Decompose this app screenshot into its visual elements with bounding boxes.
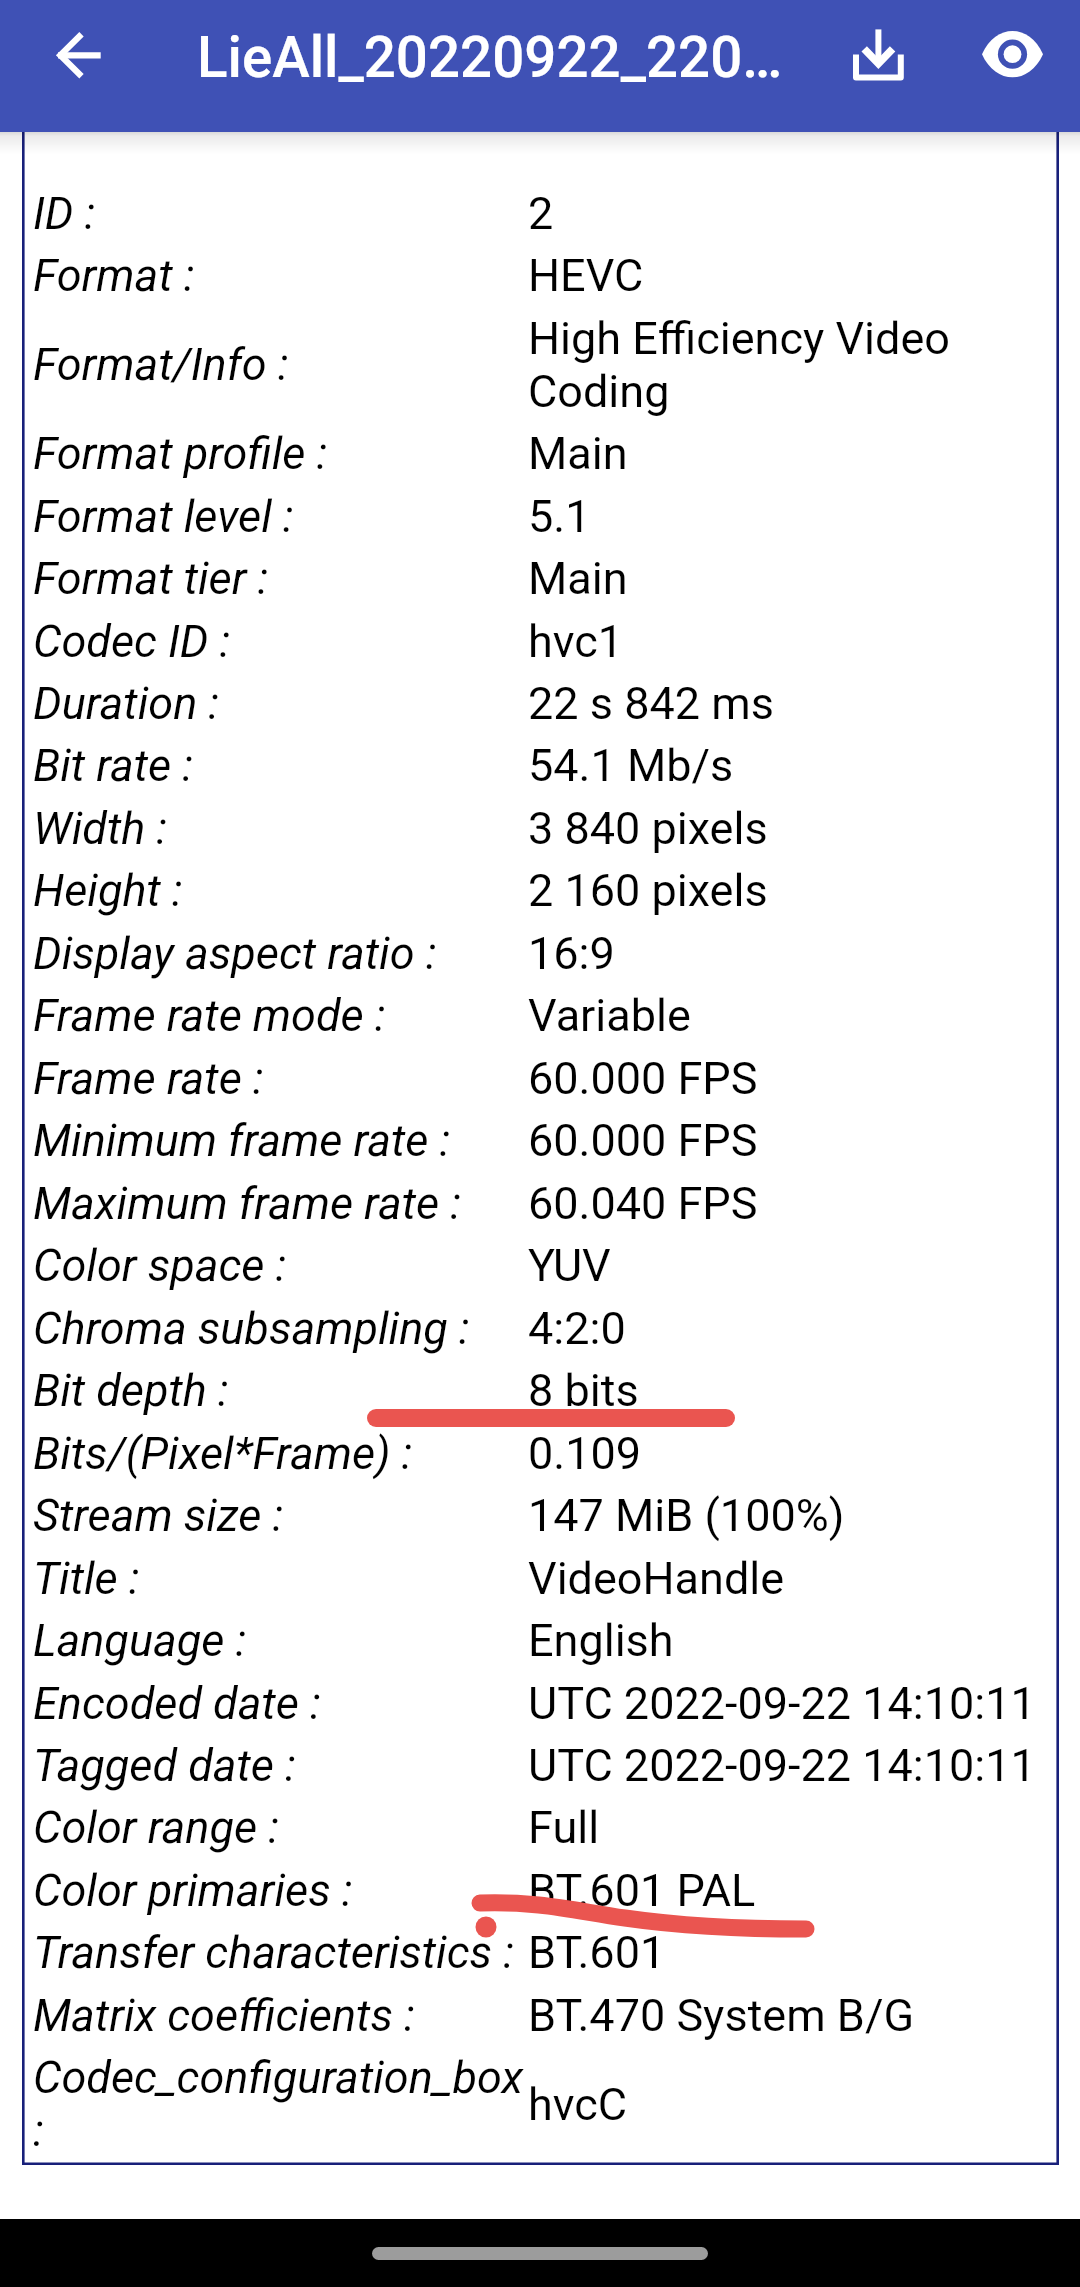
staticText: 22 s 842 ms — [528, 677, 1048, 730]
staticText: Frame rate mode : — [33, 989, 528, 1042]
staticText: Variable — [528, 989, 1048, 1042]
staticText: Color space : — [33, 1239, 528, 1292]
staticText: Format tier : — [33, 552, 528, 605]
button[interactable]: Download — [824, 1, 932, 109]
button[interactable] — [25, 797, 1056, 859]
staticText: Color range : — [33, 1801, 528, 1854]
button[interactable] — [25, 1484, 1056, 1546]
staticText: Frame rate : — [33, 1052, 528, 1105]
button[interactable] — [25, 1110, 1056, 1172]
button[interactable] — [25, 1359, 1056, 1421]
button[interactable] — [25, 1734, 1056, 1796]
button[interactable] — [25, 2047, 1056, 2162]
staticText: English — [528, 1614, 1048, 1667]
staticText: Full — [528, 1801, 1048, 1854]
staticText: Format level : — [33, 490, 528, 543]
staticText: Color primaries : — [33, 1864, 528, 1917]
staticText: 60.000 FPS — [528, 1052, 1048, 1105]
staticText: Minimum frame rate : — [33, 1114, 528, 1167]
staticText: LieAll_20220922_220… — [197, 25, 837, 91]
staticText: 3 840 pixels — [528, 802, 1048, 855]
button[interactable]: Preview — [958, 0, 1066, 108]
staticText: Width : — [33, 802, 528, 855]
staticText: Format profile : — [33, 427, 528, 480]
staticText: hvc1 — [528, 615, 1048, 668]
staticText: 2 160 pixels — [528, 864, 1048, 917]
staticText: Bit depth : — [33, 1364, 528, 1417]
staticText: Bits/(Pixel*Frame) : — [33, 1427, 528, 1480]
staticText: Format : — [33, 249, 528, 302]
staticText: 4:2:0 — [528, 1302, 1048, 1355]
button[interactable] — [25, 1984, 1056, 2046]
button[interactable] — [25, 860, 1056, 922]
staticText: Encoded date : — [33, 1677, 528, 1730]
button[interactable] — [25, 422, 1056, 484]
staticText: 60.040 FPS — [528, 1177, 1048, 1230]
staticText: Stream size : — [33, 1489, 528, 1542]
button[interactable] — [25, 485, 1056, 547]
staticText: Title : — [33, 1552, 528, 1605]
button[interactable] — [25, 1297, 1056, 1359]
staticText: Matrix coefficients : — [33, 1989, 528, 2042]
staticText: Transfer characteristics : — [33, 1926, 528, 1979]
button[interactable] — [25, 1422, 1056, 1484]
staticText: Bit rate : — [33, 739, 528, 792]
staticText: hvcC — [528, 2078, 1048, 2131]
button[interactable] — [25, 1234, 1056, 1296]
staticText: VideoHandle — [528, 1552, 1048, 1605]
staticText: BT.470 System B/G — [528, 1989, 1048, 2042]
staticText: 5.1 — [528, 490, 1048, 543]
button[interactable] — [25, 1547, 1056, 1609]
staticText: UTC 2022-09-22 14:10:11 — [528, 1739, 1048, 1792]
staticText: Language : — [33, 1614, 528, 1667]
button[interactable]: Back — [24, 1, 132, 109]
button[interactable] — [25, 1797, 1056, 1859]
button[interactable] — [25, 1859, 1056, 1921]
staticText: 60.000 FPS — [528, 1114, 1048, 1167]
staticText: Duration : — [33, 677, 528, 730]
button[interactable] — [25, 1172, 1056, 1234]
staticText: ID : — [33, 187, 528, 240]
button[interactable] — [25, 1672, 1056, 1734]
staticText: 2 — [528, 187, 1048, 240]
button[interactable] — [25, 307, 1056, 422]
staticText: Height : — [33, 864, 528, 917]
staticText: Display aspect ratio : — [33, 927, 528, 980]
staticText: Main — [528, 552, 1048, 605]
button[interactable] — [25, 922, 1056, 984]
button[interactable] — [25, 182, 1056, 244]
staticText: UTC 2022-09-22 14:10:11 — [528, 1677, 1048, 1730]
staticText: BT.601 PAL — [528, 1864, 1048, 1917]
button[interactable] — [25, 1609, 1056, 1671]
staticText: Chroma subsampling : — [33, 1302, 528, 1355]
staticText: 147 MiB (100%) — [528, 1489, 1048, 1542]
staticText: High Efficiency Video Coding — [528, 312, 1048, 418]
button[interactable] — [25, 1047, 1056, 1109]
staticText: Maximum frame rate : — [33, 1177, 528, 1230]
button[interactable] — [25, 610, 1056, 672]
staticText: Format/Info : — [33, 338, 528, 391]
button[interactable] — [25, 1922, 1056, 1984]
button[interactable] — [25, 735, 1056, 797]
staticText: YUV — [528, 1239, 1048, 1292]
staticText: HEVC — [528, 249, 1048, 302]
button[interactable] — [25, 547, 1056, 609]
staticText: Codec ID : — [33, 615, 528, 668]
staticText: Codec_configuration_box : — [33, 2051, 528, 2157]
staticText: 0.109 — [528, 1427, 1048, 1480]
staticText: 8 bits — [528, 1364, 1048, 1417]
staticText: 16:9 — [528, 927, 1048, 980]
staticText: Main — [528, 427, 1048, 480]
button[interactable] — [25, 672, 1056, 734]
button[interactable] — [25, 244, 1056, 306]
button[interactable] — [25, 985, 1056, 1047]
staticText: 54.1 Mb/s — [528, 739, 1048, 792]
staticText: Tagged date : — [33, 1739, 528, 1792]
staticText: BT.601 — [528, 1926, 1048, 1979]
